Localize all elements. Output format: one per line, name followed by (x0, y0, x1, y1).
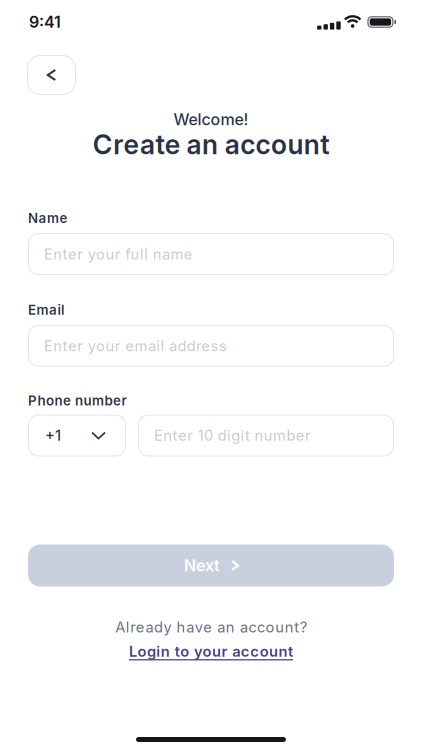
staticText: Create an account (93, 129, 329, 160)
button[interactable]: Login to your account (129, 643, 293, 660)
staticText: Next (184, 556, 220, 575)
staticText: Enter 10 digit number (154, 427, 311, 444)
staticText: 9:41 (29, 13, 61, 31)
staticText: Enter your email address (44, 337, 227, 354)
button[interactable]: Country code +1 (28, 414, 126, 456)
staticText: Phone number (28, 393, 126, 408)
staticText: +1 (45, 427, 61, 444)
staticText: Login to your account (129, 643, 293, 660)
staticText: Email (28, 302, 64, 318)
button[interactable]: Next (28, 544, 394, 586)
staticText: Welcome! (173, 110, 248, 129)
staticText: Already have an account? (115, 618, 307, 636)
staticText: Name (28, 210, 67, 226)
button[interactable]: Back (27, 55, 76, 95)
staticText: Enter your full name (44, 245, 193, 263)
